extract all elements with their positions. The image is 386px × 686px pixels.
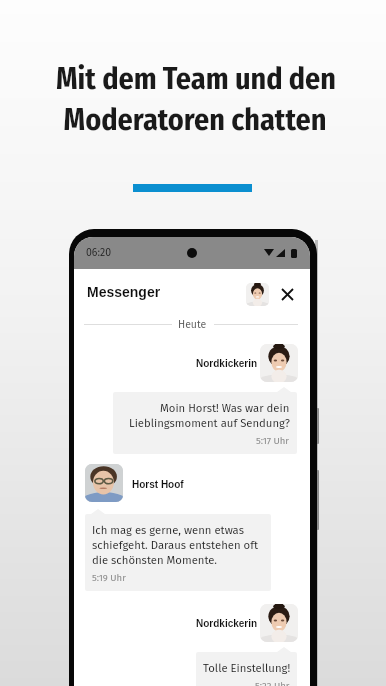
staticText: 5:17 Uhr: [256, 435, 290, 446]
staticText: Messenger: [87, 284, 161, 300]
staticText: Ich mag es gerne, wenn etwas: [92, 523, 244, 537]
staticText: 5:19 Uhr: [92, 572, 126, 583]
button[interactable]: Profile: [246, 283, 269, 306]
button[interactable]: Ich mag es gerne, wenn etwas: [85, 514, 271, 591]
staticText: die schönsten Momente.: [92, 553, 218, 567]
staticText: Horst Hoof: [132, 479, 184, 490]
staticText: Nordkickerin: [196, 358, 258, 369]
staticText: Heute: [178, 318, 207, 331]
staticText: 06:20: [86, 246, 112, 259]
staticText: Mit dem Team und den: [3, 61, 386, 97]
button[interactable]: Moin Horst! Was war dein: [113, 392, 297, 454]
button[interactable]: [74, 269, 310, 311]
button[interactable]: Tolle Einstellung!: [196, 652, 297, 686]
button[interactable]: Nordkickerin: [190, 604, 298, 642]
staticText: schiefgeht. Daraus entstehen oft: [92, 538, 259, 552]
staticText: 5:22 Uhr: [255, 680, 290, 686]
button[interactable]: Horst Hoof: [85, 464, 217, 502]
staticText: Nordkickerin: [196, 618, 258, 629]
staticText: Moderatoren chatten: [2, 102, 386, 138]
staticText: Tolle Einstellung!: [203, 661, 290, 675]
button[interactable]: Nordkickerin: [190, 344, 298, 382]
button[interactable]: Close: [278, 285, 296, 303]
staticText: Lieblingsmoment auf Sendung?: [129, 416, 290, 430]
staticText: Moin Horst! Was war dein: [160, 401, 290, 415]
